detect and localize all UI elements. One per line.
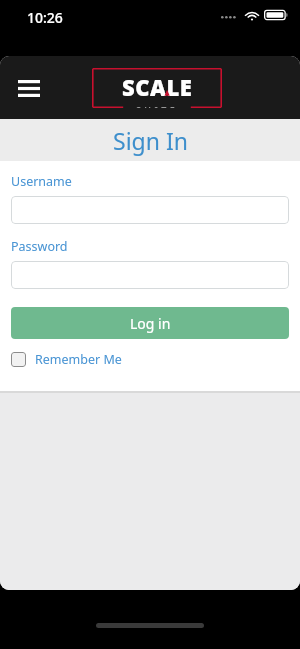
staticText: Username [11,173,72,190]
button[interactable]: Username input field [11,196,289,224]
button[interactable]: Password input field [11,261,289,289]
staticText: SUITE [136,103,179,108]
staticText: Sign In [113,125,188,156]
button[interactable]: Scale Suite logo [92,68,222,108]
staticText: Password [11,238,68,255]
staticText: Log in [130,314,171,333]
button[interactable]: Open navigation menu [12,71,46,105]
staticText: 10:26 [27,8,63,27]
staticText: Remember Me [35,351,122,368]
staticText: SCALE [122,72,193,102]
button[interactable]: Log in [11,307,289,339]
button[interactable]: Remember Me [11,349,122,370]
